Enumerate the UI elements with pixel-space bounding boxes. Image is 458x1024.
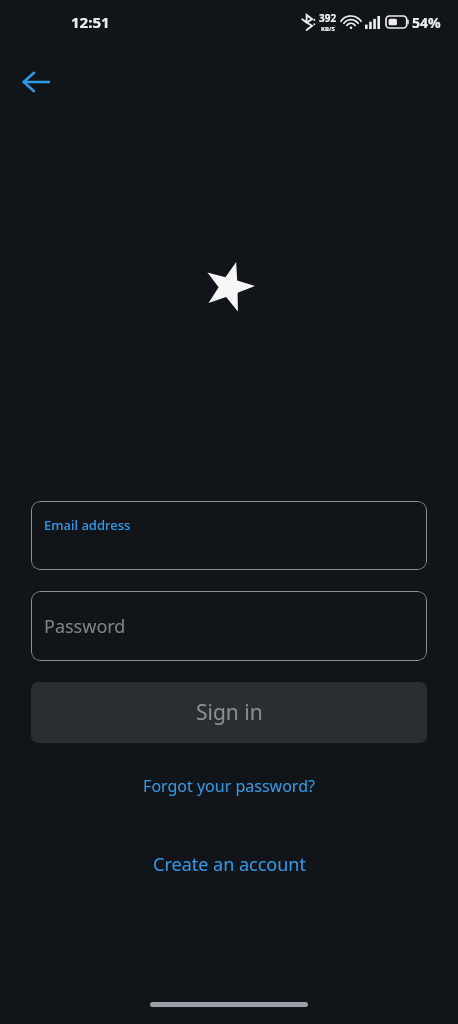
staticText: Password [44,614,126,639]
button[interactable]: Password [31,591,427,661]
button[interactable]: Create an account [31,844,427,884]
staticText: 392 [319,11,337,25]
staticText: Forgot your password? [143,775,315,797]
staticText: 54% [412,13,441,32]
button[interactable]: Email address [31,501,427,570]
staticText: Sign in [196,698,263,727]
staticText: 12:51 [71,12,110,32]
staticText: KB/S [321,25,335,33]
staticText: Email address [44,516,131,534]
staticText: Create an account [153,852,306,877]
button[interactable]: Back [8,54,64,110]
button[interactable]: Forgot your password? [31,766,427,806]
button[interactable]: Sign in [31,682,427,743]
